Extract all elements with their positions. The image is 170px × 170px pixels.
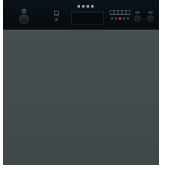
button[interactable]: Program 3 [118,9,122,21]
button[interactable]: Program 1 [110,9,114,21]
button[interactable]: Indicator [52,9,61,21]
button[interactable] [71,11,104,25]
button[interactable]: Power [17,8,31,24]
button[interactable]: Program 5 [126,9,130,21]
button[interactable]: Option [133,9,142,21]
button[interactable]: Start [146,9,155,21]
button[interactable]: Program 4 [122,9,126,21]
button[interactable]: Program 2 [114,9,118,21]
